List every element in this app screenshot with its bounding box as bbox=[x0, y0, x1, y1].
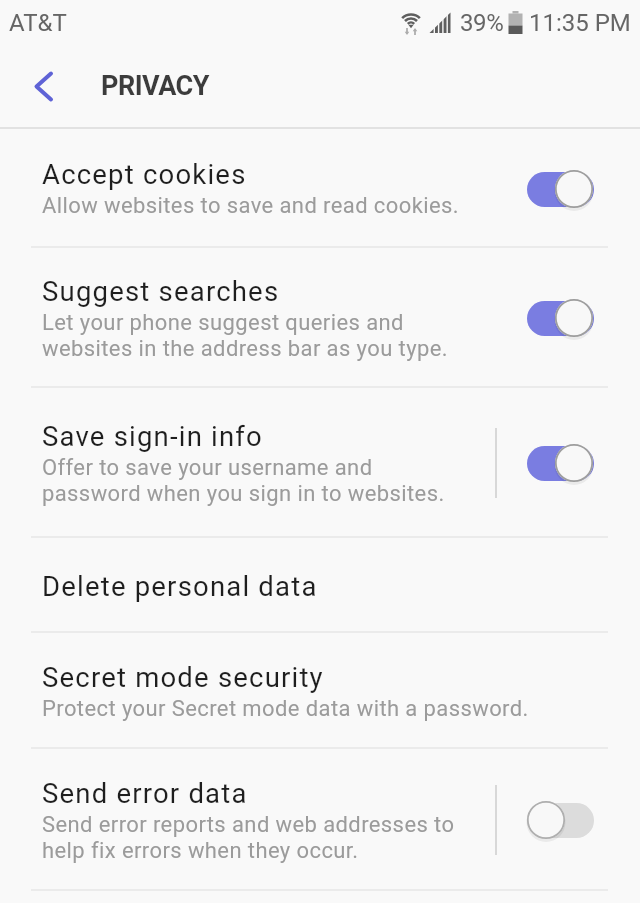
staticText: Delete personal data bbox=[42, 570, 318, 602]
staticText: Send error reports and web addresses to … bbox=[42, 812, 455, 864]
staticText: Allow websites to save and read cookies. bbox=[42, 193, 459, 219]
button[interactable] bbox=[526, 800, 594, 840]
button[interactable] bbox=[526, 169, 594, 209]
staticText: AT&T bbox=[9, 9, 67, 37]
staticText: Suggest searches bbox=[42, 275, 280, 307]
button[interactable]: Suggest searches bbox=[0, 248, 640, 388]
staticText: 39% bbox=[460, 9, 504, 37]
staticText: Save sign-in info bbox=[42, 420, 263, 452]
button[interactable]: Secret mode security bbox=[0, 633, 640, 749]
button[interactable] bbox=[25, 68, 61, 104]
button[interactable]: Delete personal data bbox=[0, 538, 640, 633]
staticText: Accept cookies bbox=[42, 158, 247, 190]
staticText: Let your phone suggest queries and websi… bbox=[42, 310, 449, 362]
staticText: 11:35 PM bbox=[529, 9, 631, 37]
staticText: Protect your Secret mode data with a pas… bbox=[42, 696, 529, 722]
button[interactable]: Send error data bbox=[0, 749, 640, 891]
staticText: Offer to save your username and password… bbox=[42, 455, 445, 507]
staticText: Send error data bbox=[42, 777, 248, 809]
staticText: PRIVACY bbox=[101, 70, 209, 102]
staticText: Secret mode security bbox=[42, 661, 324, 693]
button[interactable] bbox=[526, 443, 594, 483]
button[interactable] bbox=[526, 298, 594, 338]
button[interactable]: Accept cookies bbox=[0, 129, 640, 248]
button[interactable]: Save sign-in info bbox=[0, 388, 640, 538]
